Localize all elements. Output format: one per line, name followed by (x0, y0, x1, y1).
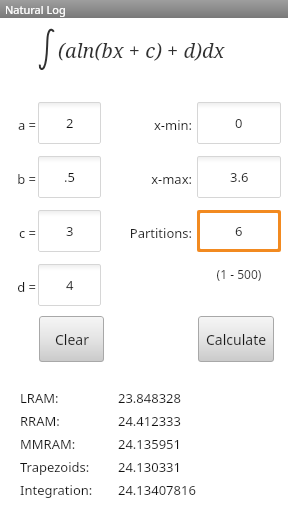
staticText: (1 - 500) (197, 266, 281, 282)
staticText: 2 (66, 114, 74, 132)
staticText: Clear (55, 330, 89, 349)
staticText: x-max: (112, 170, 192, 188)
button[interactable]: 3 (38, 210, 101, 252)
button[interactable]: 0 (197, 102, 281, 144)
button[interactable]: 6 (197, 210, 281, 252)
staticText: 24.135951 (118, 435, 268, 453)
staticText: 24.412333 (118, 412, 268, 430)
button[interactable]: .5 (38, 156, 101, 198)
staticText: .5 (64, 168, 75, 186)
staticText: Integration: (20, 481, 120, 499)
staticText: 0 (235, 114, 243, 132)
staticText: Calculate (206, 330, 267, 349)
staticText: 23.848328 (118, 389, 268, 407)
staticText: Natural Log (5, 2, 66, 17)
button[interactable]: 2 (38, 102, 101, 144)
staticText: Trapezoids: (20, 458, 120, 476)
staticText: Partitions: (112, 224, 192, 242)
button[interactable]: 4 (38, 264, 101, 306)
staticText: LRAM: (20, 389, 120, 407)
staticText: 6 (235, 222, 243, 240)
staticText: MMRAM: (20, 435, 120, 453)
staticText: 3.6 (230, 168, 249, 186)
button[interactable]: Calculate (198, 316, 274, 362)
button[interactable]: 3.6 (197, 156, 281, 198)
button[interactable]: Clear (39, 316, 104, 362)
staticText: c = (8, 224, 36, 242)
staticText: 24.13407816 (118, 481, 268, 499)
staticText: a = (8, 116, 36, 134)
staticText: RRAM: (20, 412, 120, 430)
staticText: (aln(bx + c) + d)dx (58, 37, 225, 64)
staticText: 4 (66, 276, 74, 294)
staticText: 24.130331 (118, 458, 268, 476)
staticText: b = (8, 170, 36, 188)
staticText: x-min: (112, 116, 192, 134)
staticText: 3 (66, 222, 74, 240)
staticText: d = (8, 278, 36, 296)
